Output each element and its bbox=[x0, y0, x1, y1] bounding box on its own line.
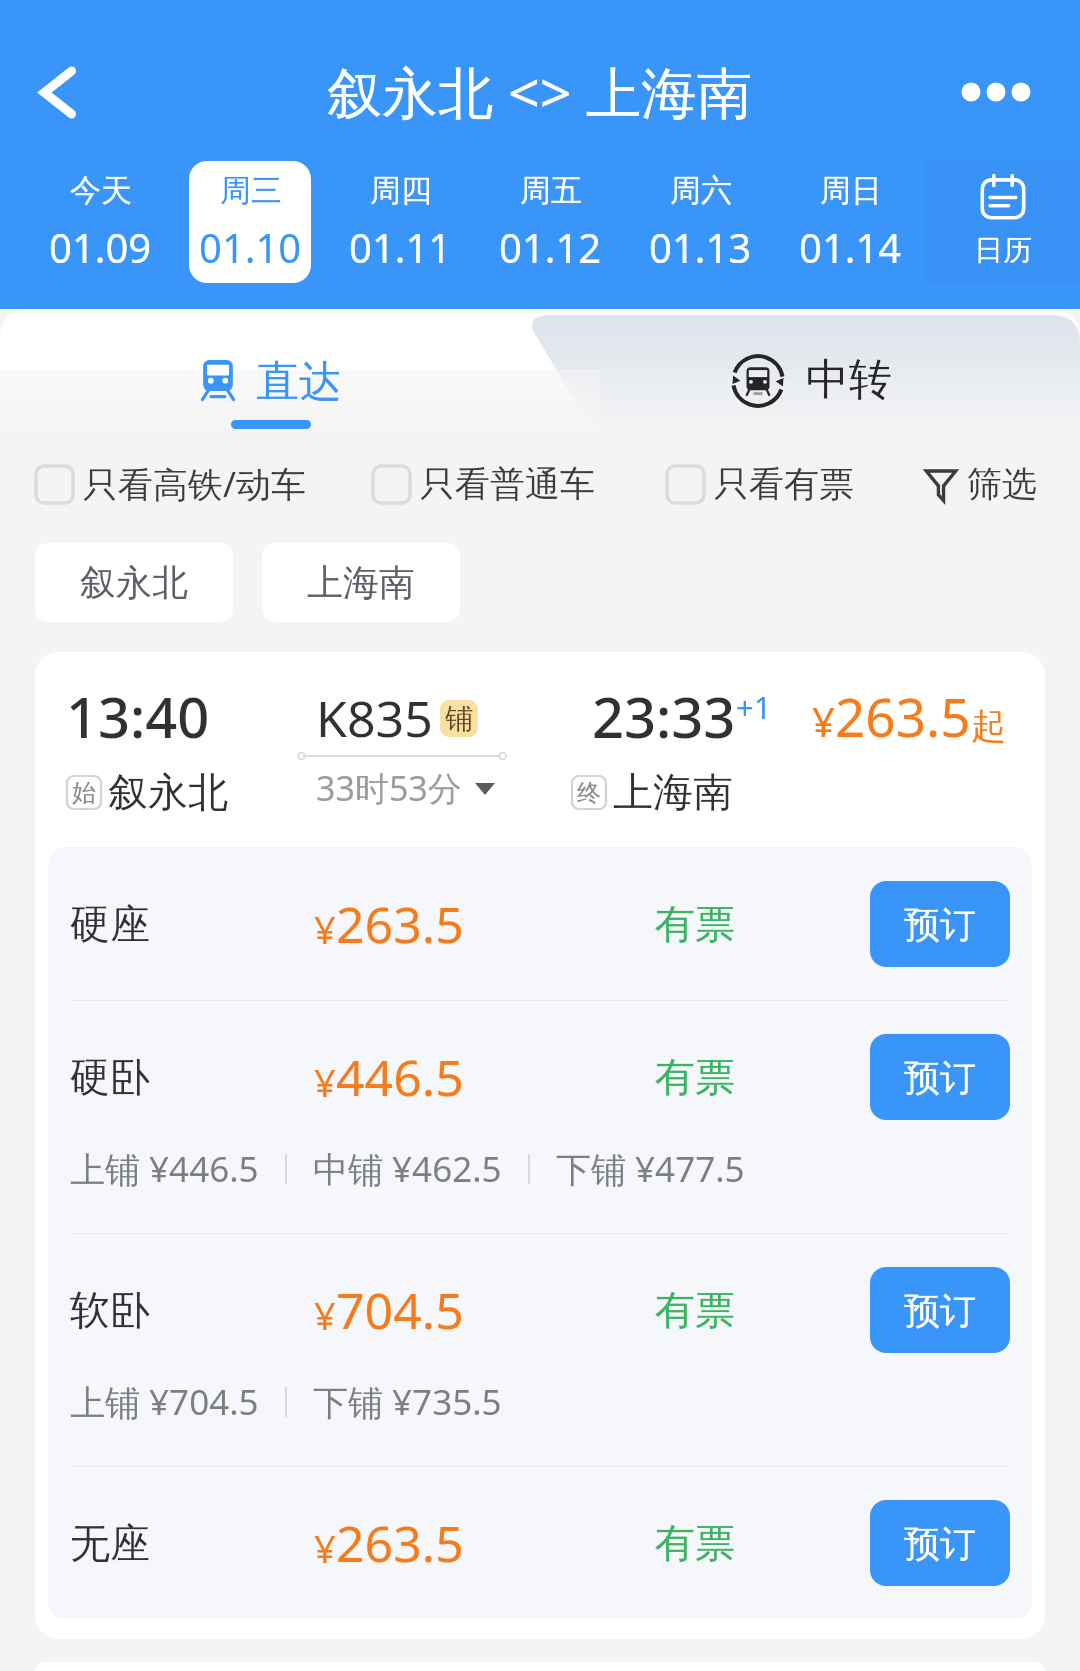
button[interactable]: 预订 bbox=[870, 1267, 1010, 1353]
staticText: 预订 bbox=[904, 1288, 976, 1333]
button[interactable]: 周四 bbox=[339, 161, 461, 283]
staticText: 01.11 bbox=[349, 220, 452, 274]
staticText: K835 bbox=[316, 684, 433, 752]
staticText: 只看高铁/动车 bbox=[83, 460, 307, 508]
staticText: ¥ bbox=[314, 1056, 336, 1108]
staticText: 704.5 bbox=[336, 1276, 464, 1344]
button[interactable]: 周六 bbox=[639, 161, 761, 283]
staticText: 起 bbox=[971, 704, 1006, 748]
staticText: 上铺 ¥704.5 bbox=[70, 1378, 259, 1426]
staticText: 只看有票 bbox=[714, 462, 854, 506]
staticText: 终 bbox=[577, 778, 601, 808]
staticText: 周三 bbox=[220, 171, 282, 210]
staticText: 叙永北 bbox=[108, 767, 228, 817]
staticText: 预订 bbox=[904, 1055, 976, 1100]
staticText: 有票 bbox=[655, 1518, 735, 1568]
staticText: 预订 bbox=[904, 902, 976, 947]
staticText: ¥ bbox=[314, 1289, 336, 1341]
button[interactable]: 上海南 bbox=[262, 543, 460, 622]
staticText: 01.12 bbox=[499, 220, 602, 274]
staticText: 今天 bbox=[70, 171, 132, 210]
staticText: 01.13 bbox=[649, 220, 752, 274]
button[interactable]: 只看高铁/动车 bbox=[36, 436, 307, 532]
staticText: 叙永北 bbox=[80, 560, 188, 605]
button[interactable]: More options bbox=[948, 44, 1044, 140]
button[interactable]: 预订 bbox=[870, 1500, 1010, 1586]
staticText: 铺 bbox=[445, 701, 473, 736]
button[interactable]: 周五 bbox=[489, 161, 611, 283]
staticText: ¥ bbox=[314, 903, 336, 955]
staticText: 23:33 bbox=[592, 678, 736, 754]
staticText: 只看普通车 bbox=[420, 462, 595, 506]
staticText: 中铺 ¥462.5 bbox=[313, 1145, 502, 1193]
button[interactable]: Back bbox=[10, 44, 106, 140]
staticText: 无座 bbox=[70, 1518, 150, 1568]
staticText: 上海南 bbox=[307, 560, 415, 605]
staticText: ¥ bbox=[314, 1522, 336, 1574]
staticText: 有票 bbox=[655, 1285, 735, 1335]
staticText: 中转 bbox=[806, 353, 892, 407]
staticText: ¥ bbox=[812, 694, 835, 748]
staticText: 筛选 bbox=[967, 462, 1037, 506]
staticText: 硬卧 bbox=[70, 1052, 150, 1102]
staticText: 01.10 bbox=[199, 220, 302, 274]
button[interactable]: 预订 bbox=[870, 881, 1010, 967]
staticText: 有票 bbox=[655, 1052, 735, 1102]
staticText: 预订 bbox=[904, 1521, 976, 1566]
button[interactable]: 周三 bbox=[189, 161, 311, 283]
staticText: +1 bbox=[736, 686, 772, 728]
staticText: 446.5 bbox=[336, 1043, 464, 1111]
staticText: 有票 bbox=[655, 899, 735, 949]
staticText: 始 bbox=[72, 778, 96, 808]
button[interactable]: 只看有票 bbox=[667, 436, 854, 532]
staticText: 周四 bbox=[370, 171, 432, 210]
staticText: 13:40 bbox=[66, 678, 210, 754]
button[interactable]: 只看普通车 bbox=[373, 436, 595, 532]
staticText: 叙永北 <> 上海南 bbox=[327, 54, 753, 130]
button[interactable]: 预订 bbox=[870, 1034, 1010, 1120]
button[interactable]: 周日 bbox=[789, 161, 911, 283]
button[interactable]: 今天 bbox=[39, 161, 161, 283]
button[interactable]: 直达 bbox=[0, 309, 545, 436]
staticText: 周五 bbox=[520, 171, 582, 210]
button[interactable]: 叙永北 bbox=[35, 543, 233, 622]
staticText: 01.09 bbox=[49, 220, 152, 274]
staticText: 263.5 bbox=[835, 680, 971, 752]
staticText: 下铺 ¥735.5 bbox=[313, 1378, 502, 1426]
button[interactable]: 筛选 bbox=[925, 462, 1037, 506]
staticText: 周日 bbox=[820, 171, 882, 210]
staticText: 上铺 ¥446.5 bbox=[70, 1145, 259, 1193]
button[interactable]: 中转 bbox=[545, 309, 1080, 436]
staticText: 263.5 bbox=[336, 1509, 464, 1577]
staticText: 硬座 bbox=[70, 899, 150, 949]
button[interactable]: Calendar bbox=[925, 161, 1080, 283]
staticText: 软卧 bbox=[70, 1285, 150, 1335]
staticText: 日历 bbox=[974, 232, 1032, 269]
staticText: 上海南 bbox=[613, 767, 733, 817]
staticText: 33时53分 bbox=[316, 765, 462, 811]
staticText: 直达 bbox=[256, 355, 342, 409]
staticText: 01.14 bbox=[799, 220, 902, 274]
staticText: 周六 bbox=[670, 171, 732, 210]
staticText: 下铺 ¥477.5 bbox=[556, 1145, 745, 1193]
button[interactable]: 13:40 bbox=[35, 652, 1045, 1639]
staticText: 263.5 bbox=[336, 890, 464, 958]
